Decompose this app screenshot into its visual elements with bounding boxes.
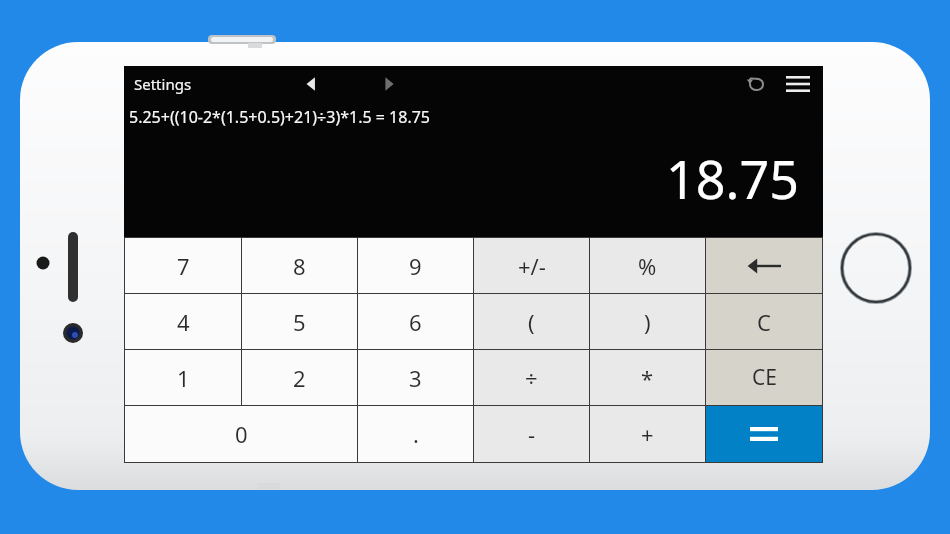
button[interactable]: - [474,406,589,462]
staticText: 7 [177,251,190,281]
staticText: CE [752,363,777,392]
staticText: Settings [134,74,192,94]
button[interactable]: ) [590,294,705,349]
button[interactable]: + [590,406,705,462]
staticText: 1 [177,363,190,393]
button[interactable]: Previous [294,67,328,101]
staticText: 18.75 [124,143,799,214]
staticText: 9 [409,251,422,281]
staticText: 5 [293,307,306,337]
button[interactable]: 9 [358,238,473,293]
button[interactable]: C [706,294,822,349]
button[interactable]: Menu [781,67,815,101]
button[interactable]: * [590,350,705,405]
staticText: ) [644,307,651,337]
button[interactable]: 5 [242,294,357,349]
staticText: - [528,419,536,449]
staticText: * [641,363,654,393]
button[interactable]: 1 [125,350,241,405]
button[interactable]: ( [474,294,589,349]
staticText: % [638,251,657,281]
button[interactable]: 8 [242,238,357,293]
button[interactable]: Equals [706,406,822,462]
button[interactable]: . [358,406,473,462]
button[interactable]: 0 [125,406,357,462]
button[interactable]: Backspace [706,238,822,293]
button[interactable]: % [590,238,705,293]
staticText: 8 [293,251,306,281]
staticText: . [413,419,419,449]
staticText: +/- [518,251,546,281]
button[interactable]: Undo [739,67,773,101]
staticText: 6 [409,307,422,337]
button[interactable]: +/- [474,238,589,293]
staticText: ÷ [525,363,538,393]
button[interactable]: CE [706,350,822,405]
staticText: 5.25+((10-2*(1.5+0.5)+21)÷3)*1.5 = 18.75 [129,106,430,128]
staticText: 0 [235,419,248,449]
button[interactable]: 3 [358,350,473,405]
button[interactable]: 6 [358,294,473,349]
staticText: C [757,307,771,337]
button[interactable]: Settings [130,70,196,98]
button[interactable]: ÷ [474,350,589,405]
button[interactable]: Next [372,67,406,101]
staticText: 2 [293,363,306,393]
button[interactable]: 4 [125,294,241,349]
staticText: + [641,419,654,449]
button[interactable]: 7 [125,238,241,293]
staticText: 3 [409,363,422,393]
button[interactable]: 2 [242,350,357,405]
staticText: ( [528,307,535,337]
staticText: 4 [177,307,190,337]
